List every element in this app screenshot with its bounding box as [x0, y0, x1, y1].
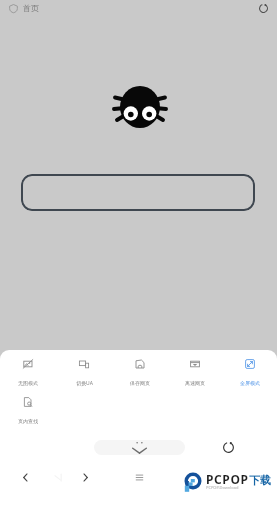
button[interactable]: Back — [15, 467, 35, 487]
staticText: 全屏模式 — [240, 380, 260, 386]
button[interactable]: 页内查找 — [0, 393, 55, 428]
button[interactable]: Reload page — [218, 437, 238, 457]
staticText: 页内查找 — [18, 418, 38, 424]
button[interactable]: Collapse panel — [94, 440, 185, 455]
staticText: 切换UA — [76, 380, 93, 387]
button[interactable]: 全屏模式 — [222, 355, 277, 390]
staticText: 首页 — [23, 3, 39, 13]
button[interactable]: Menu — [129, 467, 149, 487]
button[interactable]: 离速网页 — [167, 355, 222, 390]
button[interactable]: 首页 — [7, 1, 41, 15]
staticText: PCPOP.Download — [206, 485, 239, 490]
staticText: 离速网页 — [185, 380, 205, 386]
button[interactable]: Forward — [75, 467, 95, 487]
button[interactable]: Refresh — [255, 0, 271, 16]
button[interactable]: 切换UA — [56, 355, 112, 391]
staticText: 保存网页 — [130, 380, 150, 386]
staticText: 无图模式 — [18, 380, 38, 386]
button[interactable]: 无图模式 — [0, 355, 56, 390]
button[interactable]: 保存网页 — [112, 355, 167, 390]
staticText: 下载 — [249, 473, 271, 487]
staticText: PCPOP — [206, 471, 249, 487]
button[interactable]: Search — [21, 174, 255, 211]
